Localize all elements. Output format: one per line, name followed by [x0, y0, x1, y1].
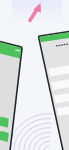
button[interactable]: App screens preview [0, 0, 69, 150]
